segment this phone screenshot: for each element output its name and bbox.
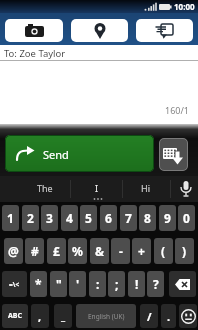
button[interactable]: / — [140, 304, 158, 328]
staticText: 8 — [144, 210, 151, 226]
staticText: ) — [182, 243, 187, 259]
button[interactable]: 7 — [120, 205, 137, 231]
button[interactable]: ? — [147, 271, 164, 297]
staticText: 4 — [66, 210, 73, 226]
staticText: ! — [135, 276, 139, 292]
button[interactable]: 3 — [41, 205, 58, 231]
button[interactable]: ! — [128, 271, 145, 297]
button[interactable] — [136, 19, 193, 42]
staticText: / — [147, 309, 152, 324]
staticText: To: Zoe Taylor — [4, 47, 66, 60]
button[interactable]: 5 — [80, 205, 97, 231]
button[interactable]: 0 — [178, 205, 195, 231]
staticText: _ — [61, 309, 66, 323]
staticText: £ — [53, 243, 60, 259]
button[interactable]: 9 — [159, 205, 176, 231]
staticText: 2 — [27, 210, 34, 226]
staticText: ; — [115, 276, 119, 292]
button[interactable] — [5, 19, 63, 42]
button[interactable]: =\< — [2, 271, 27, 297]
button[interactable]: @ — [4, 238, 23, 264]
button[interactable]: # — [25, 238, 44, 264]
button[interactable]: English (UK) — [76, 304, 136, 328]
button[interactable] — [71, 19, 128, 42]
staticText: =\< — [9, 280, 20, 289]
staticText: 10:00 — [174, 1, 195, 12]
button[interactable]: * — [30, 271, 47, 297]
button[interactable]: 8 — [139, 205, 156, 231]
staticText: @ — [8, 243, 19, 259]
button[interactable]: ' — [69, 271, 86, 297]
button[interactable]: - — [111, 238, 130, 264]
button[interactable] — [179, 304, 197, 328]
button[interactable]: 6 — [100, 205, 117, 231]
staticText: # — [31, 243, 39, 259]
staticText: & — [95, 243, 105, 259]
staticText: 9 — [164, 210, 171, 226]
button[interactable]: 1 — [2, 205, 19, 231]
button[interactable]: Send — [5, 135, 154, 172]
staticText: I — [95, 182, 99, 194]
staticText: 0 — [183, 210, 190, 226]
button[interactable]: , — [31, 304, 49, 328]
staticText: English (UK) — [88, 312, 125, 321]
staticText: % — [72, 243, 83, 259]
staticText: * — [35, 276, 42, 292]
staticText: The — [37, 182, 53, 194]
button[interactable]: " — [50, 271, 67, 297]
staticText: ? — [153, 276, 159, 292]
staticText: : — [96, 276, 100, 292]
button[interactable] — [159, 138, 188, 171]
button[interactable]: % — [68, 238, 87, 264]
button[interactable]: 2 — [22, 205, 39, 231]
staticText: 5 — [85, 210, 92, 226]
staticText: ( — [161, 243, 166, 259]
button[interactable]: ) — [175, 238, 194, 264]
staticText: " — [56, 276, 62, 292]
button[interactable]: ; — [108, 271, 125, 297]
button[interactable]: . — [161, 304, 176, 328]
staticText: , — [38, 309, 42, 324]
staticText: Send — [43, 147, 69, 162]
staticText: ABC — [8, 311, 22, 321]
staticText: - — [119, 243, 123, 259]
button[interactable]: + — [132, 238, 151, 264]
button[interactable]: £ — [47, 238, 66, 264]
button[interactable]: & — [90, 238, 109, 264]
staticText: 1 — [7, 210, 14, 226]
staticText: Hi — [141, 182, 150, 194]
staticText: 160/1 — [165, 104, 189, 116]
button[interactable]: : — [89, 271, 106, 297]
staticText: + — [138, 243, 145, 259]
staticText: . — [167, 309, 171, 324]
staticText: 7 — [125, 210, 132, 226]
button[interactable]: ( — [154, 238, 173, 264]
button[interactable] — [169, 271, 196, 297]
button[interactable]: _ — [54, 304, 72, 328]
staticText: ' — [76, 276, 80, 292]
button[interactable]: ABC — [2, 304, 28, 328]
staticText: 6 — [105, 210, 112, 226]
button[interactable]: 4 — [61, 205, 78, 231]
staticText: 3 — [46, 210, 53, 226]
